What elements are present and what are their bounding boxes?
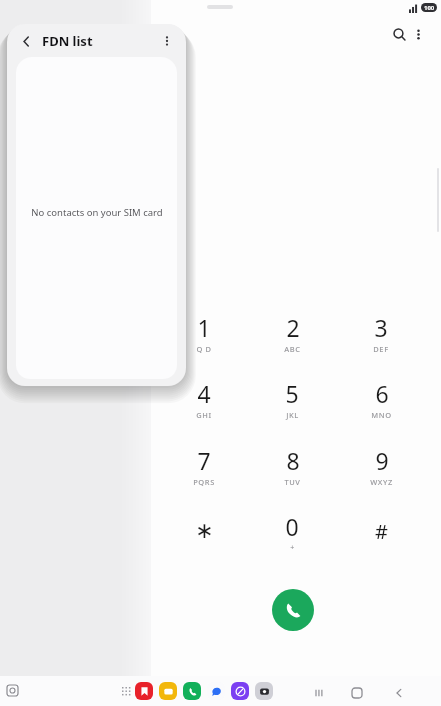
button[interactable]: Recents xyxy=(308,681,332,705)
staticText: Q D xyxy=(196,344,212,354)
staticText: 2 xyxy=(286,312,300,343)
staticText: 8 xyxy=(286,445,300,476)
staticText: FDN list xyxy=(42,32,93,50)
staticText: # xyxy=(375,518,388,545)
button[interactable]: 2 xyxy=(258,307,326,359)
button[interactable]: 0 xyxy=(258,506,326,558)
staticText: 9 xyxy=(375,445,389,476)
button[interactable]: # xyxy=(347,505,415,557)
staticText: 1 xyxy=(197,312,211,343)
staticText: 4 xyxy=(197,378,211,409)
button[interactable]: More options xyxy=(406,22,430,46)
staticText: No contacts on your SIM card xyxy=(31,206,163,219)
button[interactable]: 8 xyxy=(258,440,326,492)
staticText: 3 xyxy=(374,312,388,343)
staticText: 6 xyxy=(375,378,389,409)
button[interactable]: 7 xyxy=(170,440,238,492)
staticText: + xyxy=(290,543,295,553)
staticText: GHI xyxy=(196,410,212,420)
button[interactable]: Samsung Notes xyxy=(135,682,153,700)
button[interactable]: ∗ xyxy=(170,505,238,557)
staticText: MNO xyxy=(371,410,392,420)
button[interactable]: Apps xyxy=(119,684,134,699)
staticText: ∗ xyxy=(195,518,214,544)
button[interactable]: Search xyxy=(387,22,411,46)
staticText: JKL xyxy=(286,410,299,420)
button[interactable]: 9 xyxy=(347,440,415,492)
button[interactable]: Camera xyxy=(255,682,273,700)
button[interactable]: Internet xyxy=(231,682,249,700)
button[interactable]: Messages xyxy=(207,682,225,700)
button[interactable]: Phone xyxy=(183,682,201,700)
button[interactable]: Back xyxy=(15,30,37,52)
button[interactable]: My Files xyxy=(159,682,177,700)
staticText: 0 xyxy=(285,511,299,542)
staticText: 100 xyxy=(424,4,435,12)
button[interactable]: 1 xyxy=(170,307,238,359)
staticText: DEF xyxy=(373,344,389,354)
staticText: 5 xyxy=(285,378,299,409)
staticText: ABC xyxy=(284,344,301,354)
button[interactable]: Notifications xyxy=(1,679,23,701)
button[interactable]: 6 xyxy=(347,373,415,425)
button[interactable]: More options xyxy=(156,30,178,52)
staticText: 7 xyxy=(197,445,211,476)
button[interactable]: 4 xyxy=(170,373,238,425)
button[interactable]: Call xyxy=(272,589,314,631)
button[interactable]: Home xyxy=(345,681,369,705)
staticText: TUV xyxy=(284,477,301,487)
staticText: WXYZ xyxy=(370,477,393,487)
staticText: PQRS xyxy=(193,477,215,487)
button[interactable]: 3 xyxy=(347,307,415,359)
button[interactable]: Back xyxy=(387,681,411,705)
button[interactable]: 5 xyxy=(258,373,326,425)
